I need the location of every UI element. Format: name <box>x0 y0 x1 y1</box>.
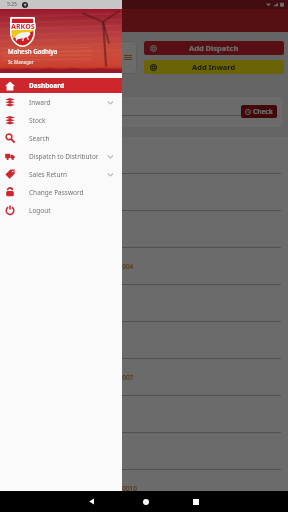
staticText: ARKOS <box>11 21 35 31</box>
button[interactable]: Dispatch No <box>0 248 288 285</box>
staticText: Dispatch No <box>7 142 42 150</box>
staticText: ARKOS <box>10 21 34 31</box>
staticText: From Date <box>10 99 35 106</box>
staticText: Add Inward <box>192 62 236 72</box>
staticText: Inward <box>29 98 51 107</box>
button[interactable]: Home <box>135 491 156 512</box>
button[interactable]: Open navigation drawer <box>6 13 22 29</box>
button[interactable]: Dispatch No <box>0 137 288 174</box>
staticText: 5:25 <box>7 1 17 8</box>
button[interactable]: Search <box>0 129 122 147</box>
staticText: Mahesh Gadhiya <box>8 47 58 55</box>
staticText: DSP/2425/0010 <box>90 484 138 493</box>
button[interactable]: Logout <box>0 201 122 219</box>
staticText: Check <box>253 107 273 116</box>
staticText: Distributor <box>7 154 38 162</box>
button[interactable]: Change Password <box>0 183 122 201</box>
button[interactable]: Dispatch to Distributor <box>0 147 122 165</box>
button[interactable]: Back <box>81 491 102 512</box>
staticText: 01/04/2024 <box>10 106 42 114</box>
staticText: Logout <box>29 206 51 215</box>
staticText: Search <box>29 134 50 143</box>
staticText: ARKOS <box>10 23 34 33</box>
staticText: ARKOS <box>12 23 36 33</box>
staticText: Add Dispatch <box>189 43 239 53</box>
staticText: Distributor <box>7 191 38 199</box>
staticText: Stock <box>29 116 46 125</box>
staticText: ARKOS <box>12 21 36 31</box>
button[interactable]: Stock <box>0 111 122 129</box>
button[interactable]: Add Dispatch <box>144 41 284 55</box>
staticText: Distributor <box>7 487 38 495</box>
staticText: Dashboard <box>29 81 65 90</box>
button[interactable]: Add Inward <box>144 60 284 74</box>
button[interactable]: Dispatch No <box>0 396 288 433</box>
staticText: Sr. Manager <box>8 59 34 65</box>
button[interactable]: Sales Return <box>0 165 122 183</box>
button[interactable]: Dispatch No <box>0 211 288 248</box>
staticText: ARKOS <box>10 22 34 32</box>
button[interactable]: Inward <box>0 93 122 111</box>
staticText: ARKOS <box>11 22 35 32</box>
button[interactable]: Dispatch No <box>0 359 288 396</box>
button[interactable]: Expand filters <box>100 41 137 74</box>
button[interactable]: Dispatch No <box>0 433 288 470</box>
staticText: Dashboard <box>29 15 77 27</box>
staticText: Dispatch to Distributor <box>29 152 99 161</box>
button[interactable]: Dispatch No <box>0 285 288 322</box>
staticText: DSP/2425/007 <box>90 373 134 382</box>
button[interactable]: Check <box>241 105 277 118</box>
staticText: Sales Return <box>29 170 68 179</box>
staticText: ARKOS <box>11 23 35 33</box>
button[interactable]: Dispatch No <box>0 322 288 359</box>
staticText: ARKOS <box>12 22 36 32</box>
staticText: DSP/2425/004 <box>90 262 134 271</box>
button[interactable]: Dispatch No <box>0 470 288 507</box>
staticText: Change Password <box>29 188 84 197</box>
button[interactable]: Recent apps <box>185 491 206 512</box>
button[interactable]: Dashboard <box>0 78 122 93</box>
button[interactable]: Dispatch No <box>0 174 288 211</box>
